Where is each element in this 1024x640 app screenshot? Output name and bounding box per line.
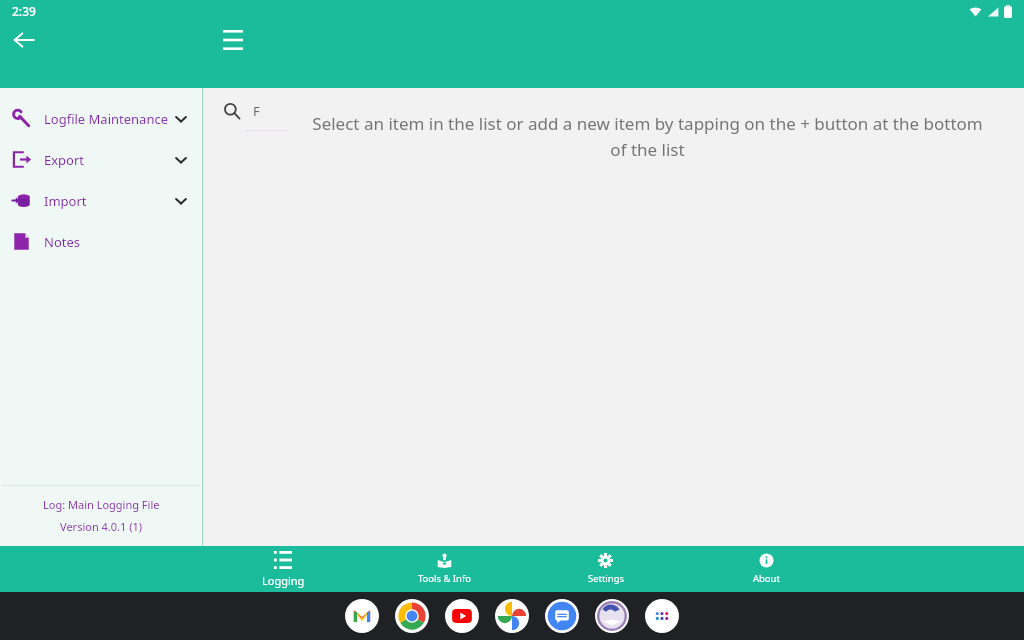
button[interactable]: Logging	[202, 546, 364, 592]
staticText: Logfile Maintenance	[44, 110, 168, 128]
staticText: F	[253, 102, 260, 120]
staticText: 2:39	[12, 3, 36, 19]
staticText: Tools & Info	[418, 572, 471, 585]
button[interactable]: App	[645, 599, 679, 633]
button[interactable]: App	[545, 599, 579, 633]
button[interactable]: Menu	[217, 24, 249, 56]
staticText: Import	[44, 192, 87, 210]
staticText: Settings	[588, 572, 624, 585]
button[interactable]: About	[686, 546, 847, 592]
staticText: Logging	[262, 573, 305, 588]
staticText: Select an item in the list or add a new …	[303, 112, 992, 161]
button[interactable]: Tools & Info	[364, 546, 525, 592]
button[interactable]: App	[495, 599, 529, 633]
button[interactable]: Logfile Maintenance	[0, 98, 202, 139]
button[interactable]: App	[345, 599, 379, 633]
staticText: Version 4.0.1 (1)	[60, 519, 143, 534]
staticText: Export	[44, 151, 85, 169]
button[interactable]: Import	[0, 180, 202, 221]
button[interactable]: App	[395, 599, 429, 633]
staticText: Notes	[44, 233, 80, 251]
button[interactable]: App	[445, 599, 479, 633]
button[interactable]: Back	[8, 24, 40, 56]
button[interactable]: App	[595, 599, 629, 633]
staticText: About	[753, 572, 780, 585]
button[interactable]: Export	[0, 139, 202, 180]
button[interactable]: Settings	[525, 546, 686, 592]
staticText: Log: Main Logging File	[43, 497, 160, 512]
button[interactable]: Notes	[0, 221, 202, 262]
